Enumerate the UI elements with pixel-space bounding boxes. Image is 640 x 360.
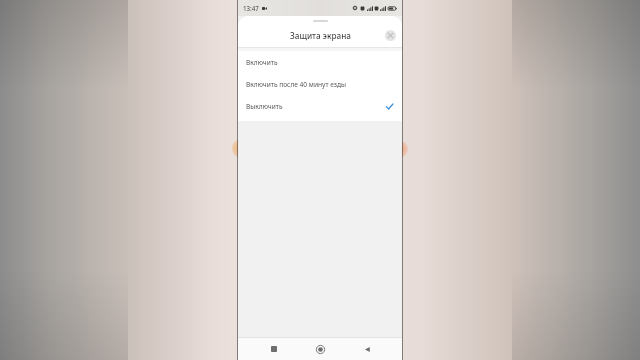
button[interactable]: Выключить	[238, 95, 402, 117]
button[interactable]: Включить после 40 минут езды	[238, 73, 402, 95]
button[interactable]: Закрыть	[383, 28, 397, 42]
staticText: Выключить	[246, 102, 385, 111]
staticText: Включить после 40 минут езды	[246, 80, 394, 89]
staticText: Защита экрана	[290, 30, 351, 41]
button[interactable]: Главный экран	[309, 338, 331, 360]
staticText: Включить	[246, 58, 394, 67]
staticText: 13:47	[243, 4, 259, 12]
button[interactable]: Включить	[238, 51, 402, 73]
button[interactable]: Назад	[356, 338, 378, 360]
button[interactable]: Недавние приложения	[263, 338, 285, 360]
